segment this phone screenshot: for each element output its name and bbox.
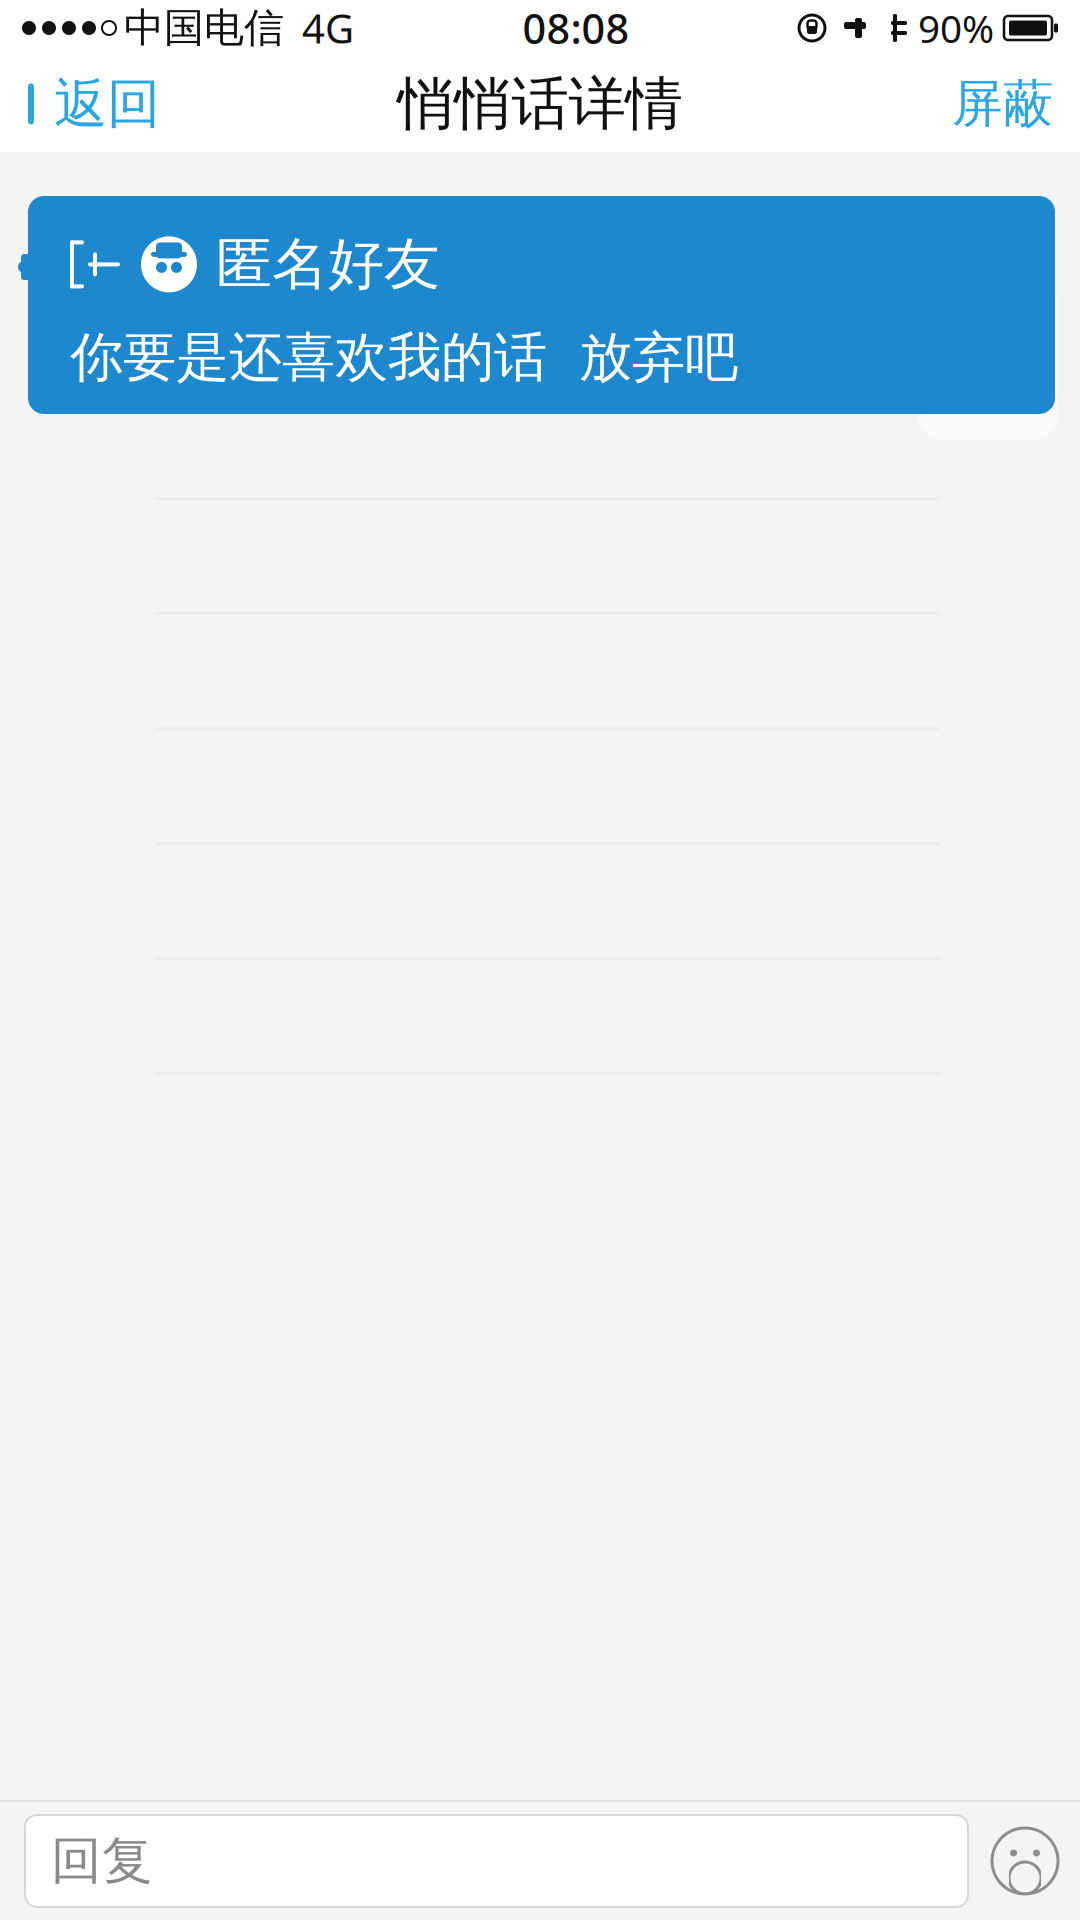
staticText: 08:08 bbox=[522, 1, 629, 55]
staticText: 90% bbox=[918, 2, 994, 54]
staticText: 中国电信 bbox=[124, 3, 284, 52]
staticText: 回复 bbox=[51, 1830, 153, 1892]
button[interactable]: 屏蔽 bbox=[926, 57, 1080, 151]
staticText: 屏蔽 bbox=[952, 73, 1054, 135]
staticText: 匿名好友 bbox=[216, 230, 440, 299]
staticText: 悄悄话详情 bbox=[397, 69, 682, 139]
button[interactable]: 回复 bbox=[25, 1815, 968, 1907]
staticText: 返回 bbox=[54, 71, 160, 137]
button[interactable]: Emoji bbox=[968, 1806, 1080, 1916]
staticText: 4G bbox=[302, 1, 354, 54]
staticText: 你要是还喜欢我的话 放弃吧 bbox=[70, 325, 738, 390]
button[interactable]: 返回 bbox=[0, 57, 182, 151]
